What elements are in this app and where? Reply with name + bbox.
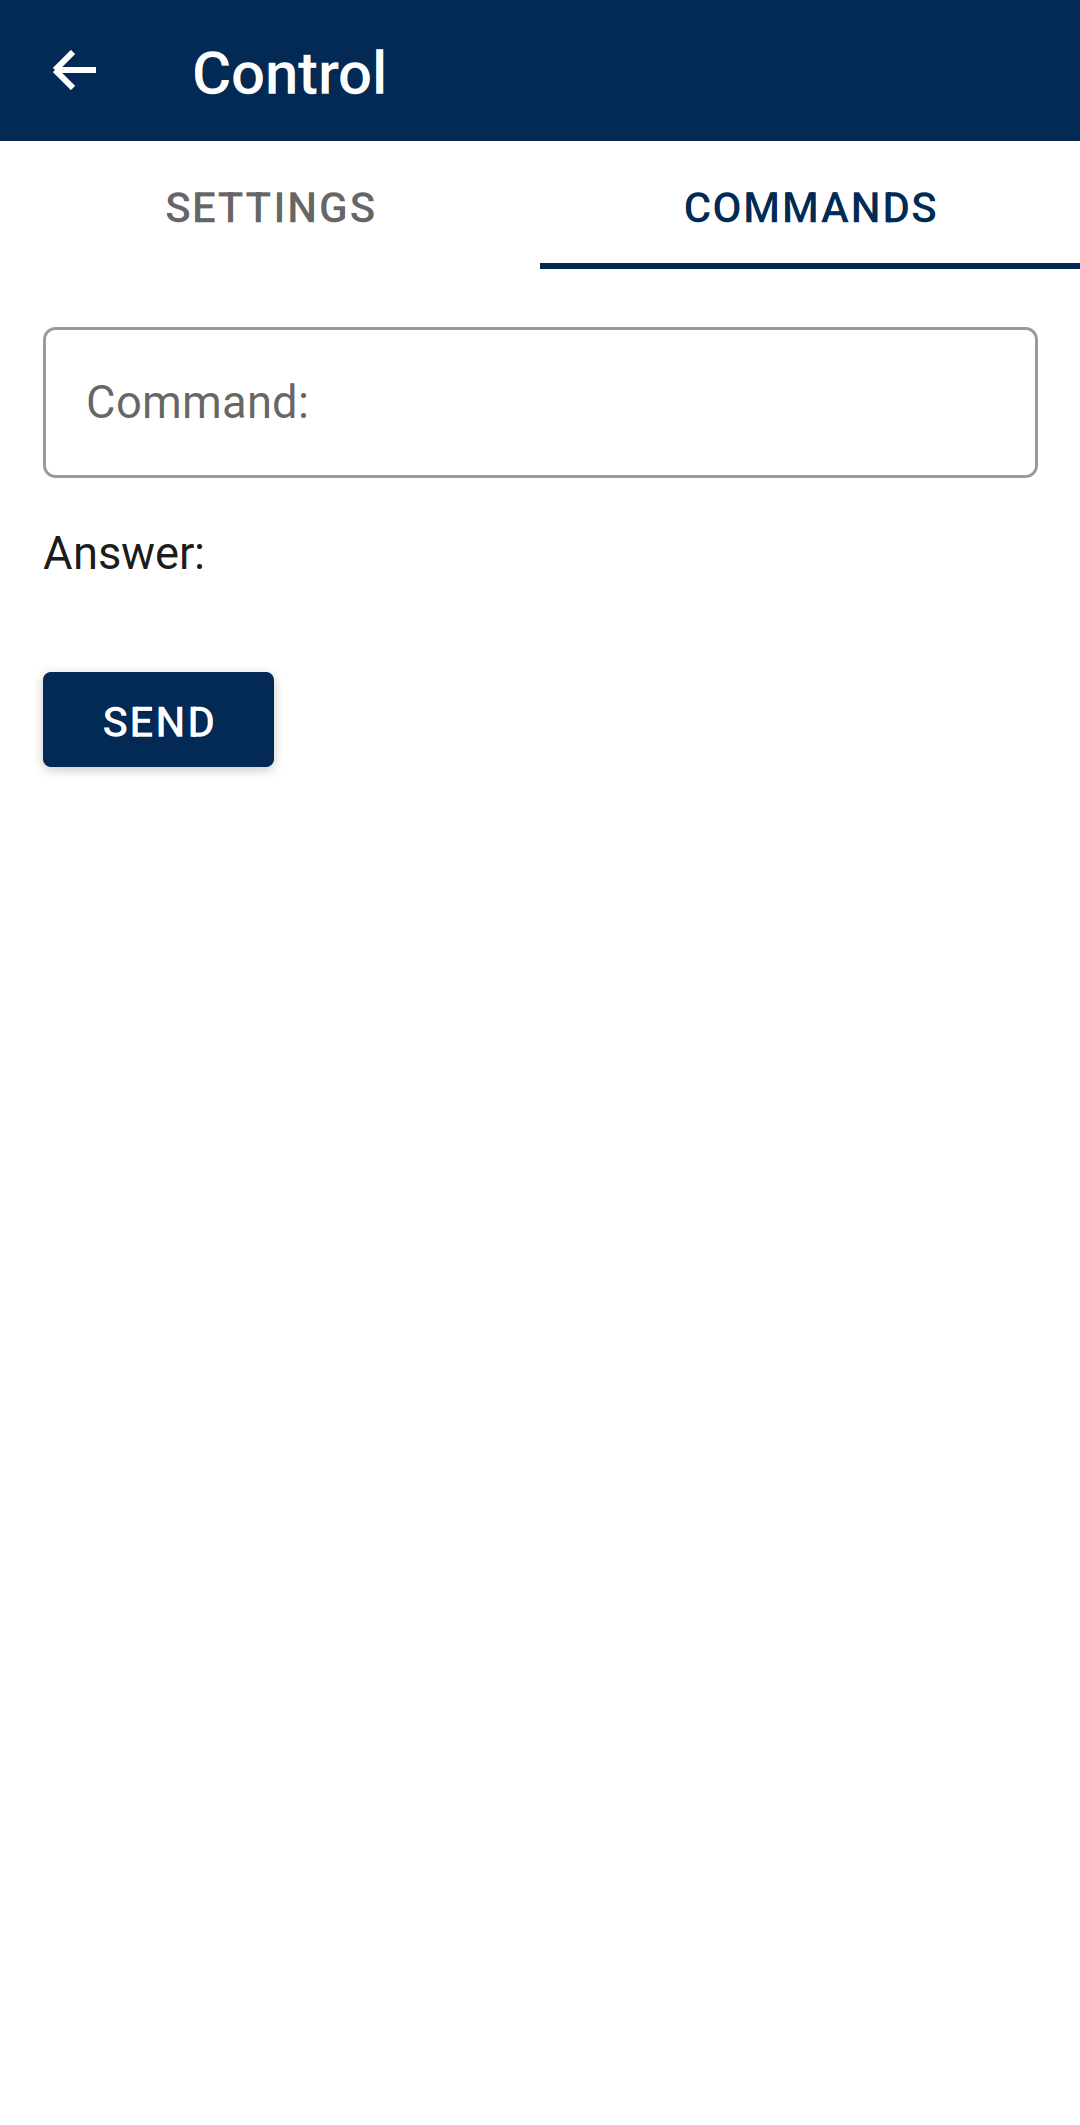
- staticText: Answer:: [43, 527, 205, 580]
- staticText: Control: [192, 38, 387, 108]
- button[interactable]: COMMANDS: [540, 141, 1080, 269]
- staticText: Command:: [86, 376, 309, 429]
- button[interactable]: Back: [20, 0, 140, 141]
- staticText: SEND: [102, 698, 214, 747]
- staticText: SETTINGS: [165, 183, 375, 233]
- staticText: COMMANDS: [684, 183, 936, 233]
- button[interactable]: SEND: [43, 672, 274, 767]
- button[interactable]: SETTINGS: [0, 144, 540, 272]
- button[interactable]: Command:: [43, 327, 1038, 478]
